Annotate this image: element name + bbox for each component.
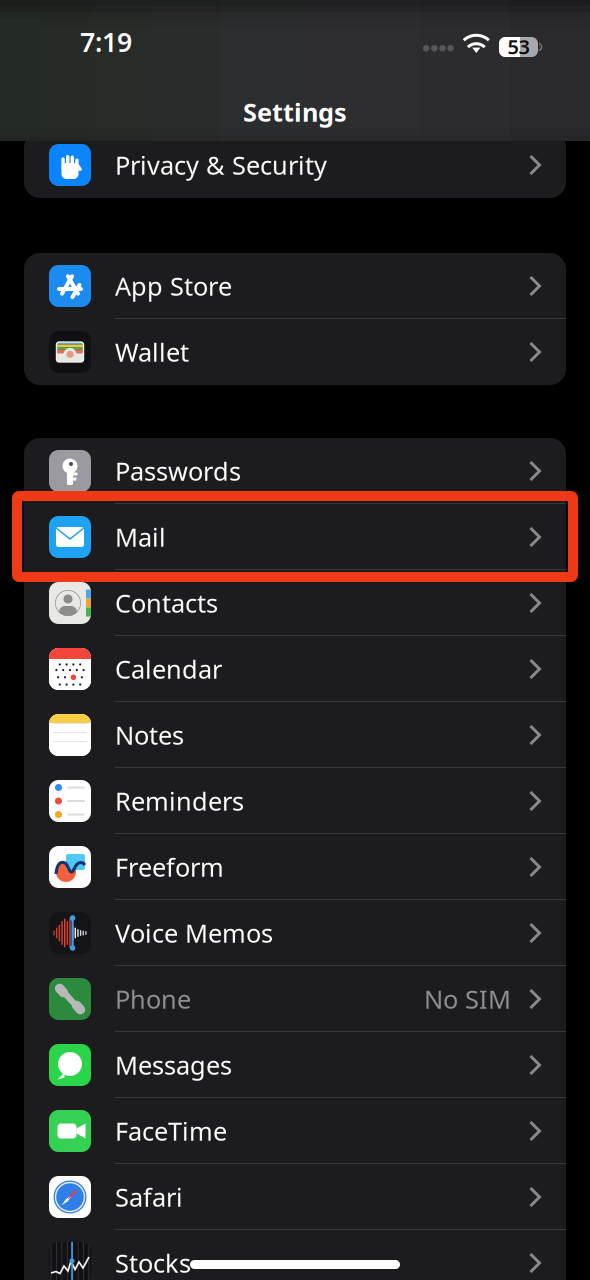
- button[interactable]: Freeform: [24, 834, 566, 900]
- button[interactable]: Calendar: [24, 636, 566, 702]
- staticText: Wallet: [115, 335, 189, 369]
- staticText: FaceTime: [115, 1114, 227, 1148]
- staticText: Settings: [243, 95, 347, 129]
- button[interactable]: Notes: [24, 702, 566, 768]
- staticText: Phone: [115, 982, 191, 1016]
- button[interactable]: Privacy & Security: [24, 132, 566, 198]
- button[interactable]: App Store: [24, 253, 566, 319]
- staticText: Stocks: [115, 1246, 191, 1280]
- button[interactable]: Safari: [24, 1164, 566, 1230]
- button[interactable]: Passwords: [24, 438, 566, 504]
- button[interactable]: Stocks: [24, 1230, 566, 1280]
- staticText: Reminders: [115, 784, 244, 818]
- staticText: No SIM: [424, 982, 511, 1016]
- staticText: Freeform: [115, 850, 224, 884]
- button[interactable]: FaceTime: [24, 1098, 566, 1164]
- staticText: Passwords: [115, 454, 241, 488]
- staticText: Calendar: [115, 652, 222, 686]
- button[interactable]: Phone: [24, 966, 566, 1032]
- button[interactable]: Messages: [24, 1032, 566, 1098]
- staticText: 7:19: [80, 24, 132, 59]
- staticText: App Store: [115, 269, 232, 303]
- staticText: Safari: [115, 1180, 183, 1214]
- staticText: Contacts: [115, 586, 218, 620]
- staticText: 53: [507, 33, 529, 60]
- staticText: Notes: [115, 718, 184, 752]
- staticText: Messages: [115, 1048, 232, 1082]
- button[interactable]: Contacts: [24, 570, 566, 636]
- staticText: Mail: [115, 520, 166, 554]
- staticText: Privacy & Security: [115, 148, 327, 182]
- button[interactable]: Reminders: [24, 768, 566, 834]
- button[interactable]: Voice Memos: [24, 900, 566, 966]
- staticText: Voice Memos: [115, 916, 273, 950]
- button[interactable]: Wallet: [24, 319, 566, 385]
- button[interactable]: Mail: [24, 504, 566, 570]
